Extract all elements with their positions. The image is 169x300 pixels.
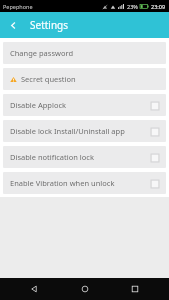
staticText: Disable lock Install/Uninstall app: [10, 126, 150, 136]
staticText: Settings: [30, 18, 69, 32]
button[interactable]: Change password: [3, 42, 166, 64]
staticText: Pepephone: [3, 3, 33, 10]
button[interactable]: Disable Applock: [3, 94, 166, 116]
button[interactable]: Home: [68, 278, 102, 300]
staticText: Enable Vibration when unlock: [10, 178, 150, 188]
button[interactable]: Back: [0, 12, 26, 38]
staticText: Secret question: [21, 74, 159, 84]
button[interactable]: Back: [17, 278, 51, 300]
button[interactable]: Disable lock Install/Uninstall app check…: [150, 127, 159, 136]
button[interactable]: Disable Applock checkbox: [150, 101, 159, 110]
button[interactable]: Disable notification lock: [3, 146, 166, 168]
staticText: Disable notification lock: [10, 152, 150, 162]
button[interactable]: Recents: [118, 278, 152, 300]
button[interactable]: Enable Vibration when unlock checkbox: [150, 179, 159, 188]
button[interactable]: Secret question: [3, 68, 166, 90]
button[interactable]: Disable lock Install/Uninstall app: [3, 120, 166, 142]
button[interactable]: Enable Vibration when unlock: [3, 172, 166, 194]
staticText: Change password: [10, 48, 159, 58]
staticText: 23%: [127, 3, 138, 10]
staticText: Disable Applock: [10, 100, 150, 110]
button[interactable]: Disable notification lock checkbox: [150, 153, 159, 162]
staticText: 23:09: [151, 3, 166, 10]
